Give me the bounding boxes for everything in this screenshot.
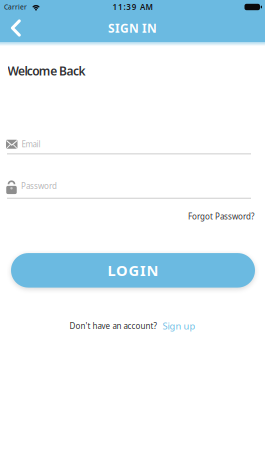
staticText: Don't have an account?	[69, 320, 156, 331]
staticText: Password	[21, 181, 57, 191]
staticText: Sign up	[162, 320, 195, 332]
button[interactable]: Sign up	[162, 320, 195, 332]
button[interactable]: LOGIN	[11, 253, 255, 288]
staticText: Email	[21, 139, 40, 149]
staticText: Forgot Password?	[188, 211, 254, 222]
staticText: 11:39 AM	[112, 2, 153, 12]
staticText: Welcome Back	[7, 63, 85, 79]
button[interactable]: Back	[0, 14, 31, 42]
staticText: Carrier	[4, 3, 27, 11]
staticText: SIGN IN	[108, 20, 157, 36]
staticText: LOGIN	[107, 261, 158, 280]
button[interactable]: Forgot Password?	[188, 211, 254, 222]
